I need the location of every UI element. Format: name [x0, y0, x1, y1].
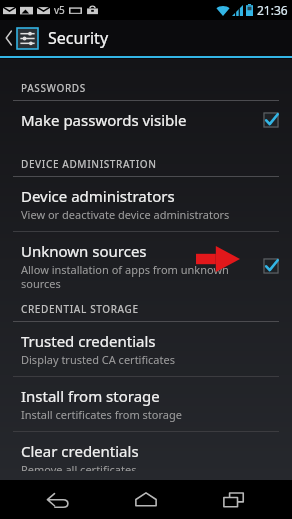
- staticText: Clear credentials: [21, 441, 139, 461]
- button[interactable]: Recent apps: [204, 480, 264, 519]
- staticText: Trusted credentials: [21, 331, 156, 351]
- button[interactable]: Home: [116, 480, 176, 519]
- button[interactable]: Device administrators: [0, 177, 292, 231]
- staticText: CREDENTIAL STORAGE: [21, 302, 139, 316]
- button[interactable]: Make passwords visible: [0, 101, 292, 139]
- staticText: View or deactivate device administrators: [21, 207, 230, 222]
- button[interactable]: Up, Security: [0, 20, 292, 56]
- staticText: v5: [54, 3, 65, 17]
- button[interactable]: Clear credentials: [0, 432, 292, 480]
- staticText: DEVICE ADMINISTRATION: [21, 157, 157, 171]
- button[interactable]: Make passwords visible checkbox: [263, 112, 279, 128]
- staticText: Install from storage: [21, 386, 160, 406]
- button[interactable]: Unknown sources: [0, 232, 292, 300]
- button[interactable]: Trusted credentials: [0, 322, 292, 376]
- staticText: Unknown sources: [21, 241, 147, 261]
- staticText: 21:36: [257, 2, 288, 18]
- staticText: Security: [48, 27, 109, 49]
- staticText: Remove all certificates: [21, 462, 137, 471]
- staticText: Make passwords visible: [21, 110, 187, 130]
- button[interactable]: Install from storage: [0, 377, 292, 431]
- staticText: Device administrators: [21, 186, 175, 206]
- staticText: PASSWORDS: [21, 81, 86, 95]
- staticText: Install certificates from storage: [21, 407, 182, 422]
- button[interactable]: Unknown sources checkbox: [263, 258, 279, 274]
- staticText: Allow installation of apps from unknown …: [21, 262, 229, 291]
- staticText: Display trusted CA certificates: [21, 352, 175, 367]
- button[interactable]: Back: [28, 480, 88, 519]
